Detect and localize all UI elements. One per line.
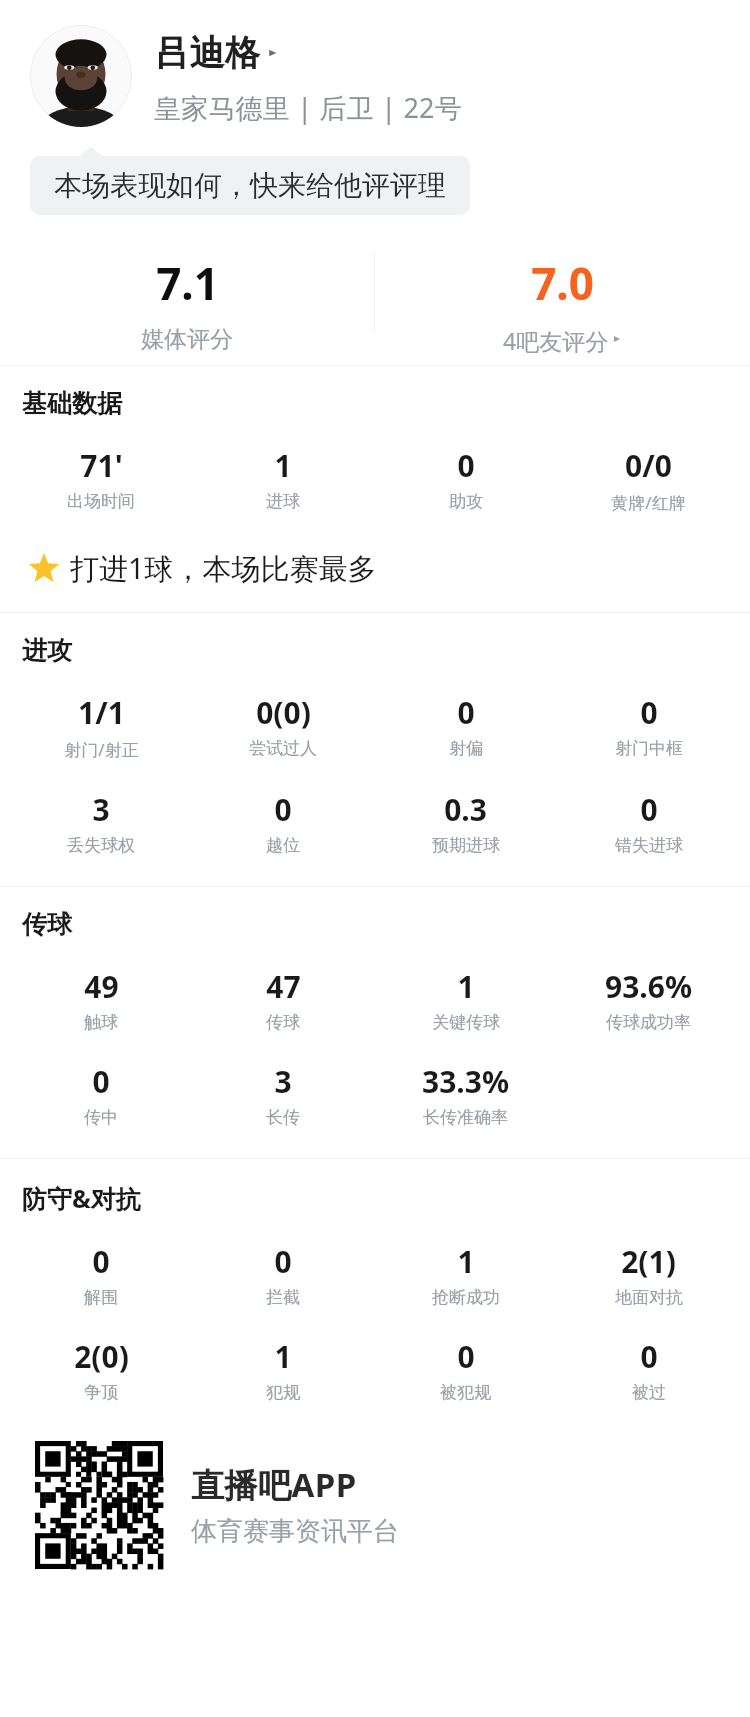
staticText: 1	[274, 1336, 292, 1377]
staticText: 0	[274, 789, 292, 830]
staticText: 拦截	[266, 1287, 300, 1308]
staticText: 4吧友评分	[503, 325, 609, 353]
staticText: 93.6%	[605, 966, 692, 1007]
staticText: 3	[92, 789, 110, 830]
staticText: 打进1球，本场比赛最多	[70, 548, 377, 588]
staticText: 2(0)	[74, 1336, 129, 1377]
staticText: 尝试过人	[249, 738, 317, 759]
staticText: 0	[640, 1336, 658, 1377]
staticText: 长传	[266, 1107, 300, 1128]
button[interactable]: 本场表现如何，快来给他评评理	[30, 156, 470, 215]
staticText: 黄牌/红牌	[611, 491, 686, 514]
staticText: 7.1	[156, 253, 219, 313]
staticText: 争顶	[84, 1382, 118, 1403]
staticText: 吕迪格	[154, 31, 261, 75]
staticText: 传球	[266, 1012, 300, 1033]
staticText: 基础数据	[22, 388, 122, 419]
staticText: 防守&对抗	[22, 1181, 141, 1215]
staticText: 本场表现如何，快来给他评评理	[54, 168, 446, 203]
staticText: 0.3	[444, 789, 487, 830]
button[interactable]: 吕迪格	[154, 31, 279, 75]
staticText: 0	[640, 789, 658, 830]
staticText: 越位	[266, 835, 300, 856]
button[interactable]: Player photo	[30, 25, 132, 127]
staticText: 7.0	[531, 253, 594, 313]
staticText: 解围	[84, 1287, 118, 1308]
staticText: 长传准确率	[423, 1107, 508, 1128]
staticText: 关键传球	[432, 1012, 500, 1033]
staticText: 被过	[632, 1382, 666, 1403]
other: QR code	[35, 1441, 163, 1569]
staticText: 预期进球	[432, 835, 500, 856]
staticText: 触球	[84, 1012, 118, 1033]
staticText: 3	[274, 1061, 292, 1102]
staticText: 0	[640, 692, 658, 733]
staticText: 0	[92, 1241, 110, 1282]
staticText: 49	[84, 966, 119, 1007]
staticText: 1	[457, 966, 475, 1007]
staticText: 1/1	[78, 692, 125, 733]
staticText: 0	[274, 1241, 292, 1282]
staticText: 出场时间	[67, 491, 135, 512]
staticText: 1	[457, 1241, 475, 1282]
staticText: 射门/射正	[64, 738, 139, 761]
staticText: 被犯规	[440, 1382, 491, 1403]
staticText: 0	[92, 1061, 110, 1102]
staticText: 71'	[80, 445, 123, 486]
staticText: 0	[457, 445, 475, 486]
staticText: 0	[457, 1336, 475, 1377]
staticText: 进球	[266, 491, 300, 512]
button[interactable]: 7.1	[0, 253, 374, 353]
staticText: 传球成功率	[606, 1012, 691, 1033]
staticText: 进攻	[22, 635, 72, 666]
staticText: 丢失球权	[67, 835, 135, 856]
staticText: 直播吧APP	[191, 1462, 357, 1507]
staticText: 犯规	[266, 1382, 300, 1403]
staticText: 0(0)	[256, 692, 311, 733]
staticText: 33.3%	[422, 1061, 509, 1102]
staticText: 2(1)	[621, 1241, 676, 1282]
button[interactable]: 打进1球，本场比赛最多	[0, 548, 750, 588]
staticText: 助攻	[449, 491, 483, 512]
button[interactable]: QR code	[0, 1441, 750, 1569]
staticText: 错失进球	[615, 835, 683, 856]
staticText: 0	[457, 692, 475, 733]
button[interactable]: 7.0	[375, 253, 750, 353]
staticText: 47	[266, 966, 301, 1007]
staticText: 皇家马德里 | 后卫 | 22号	[154, 89, 462, 126]
staticText: 传中	[84, 1107, 118, 1128]
staticText: 射偏	[449, 738, 483, 759]
staticText: 抢断成功	[432, 1287, 500, 1308]
staticText: 体育赛事资讯平台	[191, 1515, 399, 1548]
staticText: 地面对抗	[615, 1287, 683, 1308]
staticText: 传球	[22, 909, 72, 940]
staticText: 射门中框	[615, 738, 683, 759]
staticText: 0/0	[625, 445, 672, 486]
staticText: 1	[274, 445, 292, 486]
staticText: 媒体评分	[141, 325, 233, 353]
